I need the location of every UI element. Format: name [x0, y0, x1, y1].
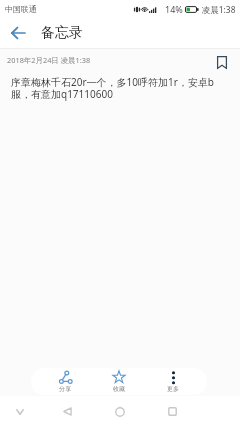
staticText: 收藏 [113, 385, 125, 393]
button[interactable]: Back [2, 17, 34, 48]
button[interactable]: Home [93, 396, 146, 427]
staticText: 分享 [59, 385, 71, 393]
button[interactable]: 更多 [146, 371, 200, 393]
staticText: 备忘录 [41, 24, 83, 42]
staticText: 更多 [167, 385, 179, 393]
button[interactable]: Bookmark [213, 53, 231, 71]
button[interactable]: 分享 [38, 371, 92, 393]
staticText: 2018年2月24日 凌晨1:38 [7, 55, 91, 65]
staticText: 14% [165, 3, 183, 15]
button[interactable]: 收藏 [92, 370, 146, 393]
button[interactable]: Recent apps [146, 396, 199, 427]
button[interactable]: Hide navigation bar [4, 396, 35, 427]
staticText: 凌晨1:38 [202, 4, 236, 15]
staticText: 序章梅林千石20r一个，多10呼符加1r，安卓b服，有意加q17110600 [11, 75, 231, 101]
button[interactable]: Back [41, 396, 93, 427]
staticText: 中国联通 [5, 4, 37, 14]
